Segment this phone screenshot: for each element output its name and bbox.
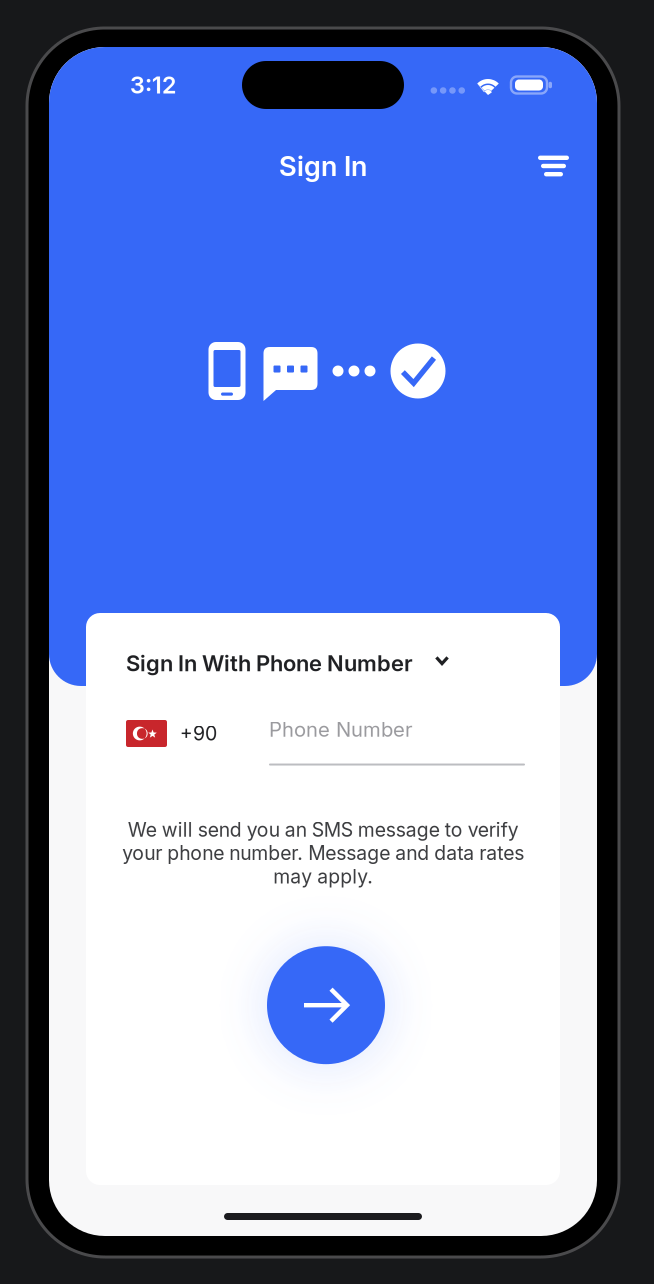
staticText: Phone Number	[269, 717, 413, 741]
staticText: Sign In With Phone Number	[126, 650, 413, 677]
staticText: We will send you an SMS message to verif…	[122, 818, 524, 888]
staticText: Sign In	[279, 149, 367, 183]
button[interactable]: +90	[126, 720, 217, 747]
staticText: 3:12	[130, 71, 176, 99]
button[interactable]: Menu	[525, 142, 582, 189]
button[interactable]: Continue	[267, 946, 385, 1064]
button[interactable]: Phone Number	[269, 717, 525, 765]
button[interactable]: Sign In With Phone Number	[126, 650, 456, 674]
staticText: +90	[180, 722, 217, 745]
